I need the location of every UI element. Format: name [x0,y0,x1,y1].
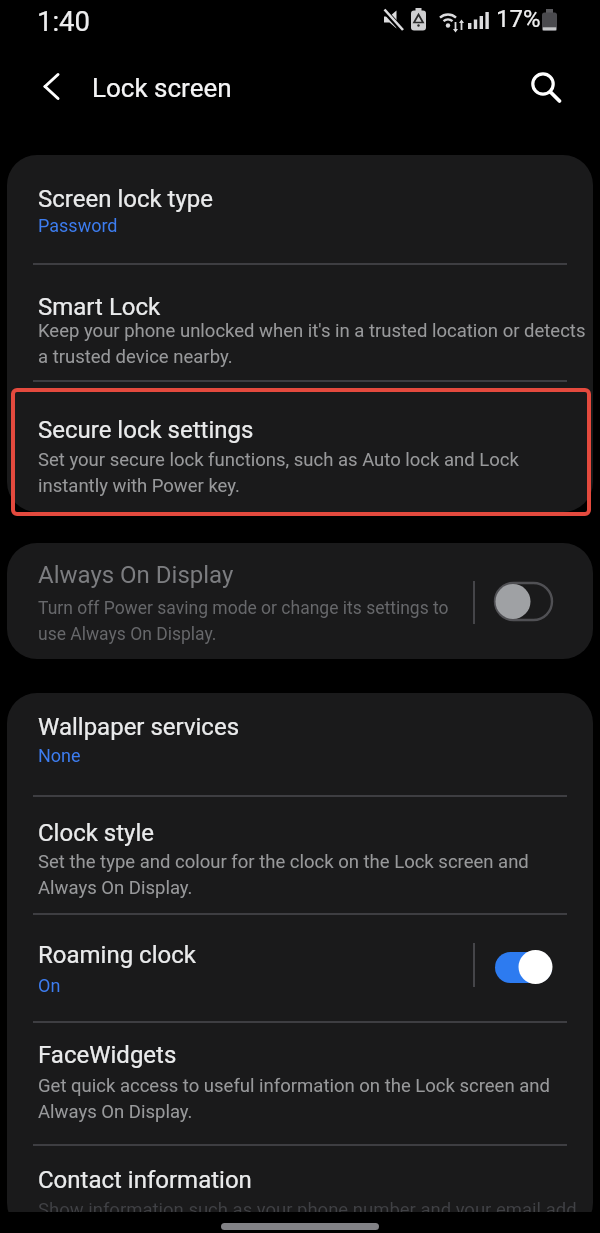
button[interactable] [221,1223,379,1230]
button[interactable] [524,64,568,108]
staticText: Lock screen [92,73,232,103]
staticText: a trusted device nearby. [38,346,233,368]
staticText: use Always On Display. [38,624,217,645]
staticText: On [38,975,61,996]
button[interactable]: Contact information [7,1146,593,1233]
staticText: 1:40 [37,5,91,37]
staticText: Always On Display. [38,877,193,899]
staticText: Wallpaper services [38,713,240,741]
staticText: FaceWidgets [38,1041,177,1069]
button[interactable] [38,68,66,106]
button[interactable]: Clock style [7,797,593,913]
staticText: Set your secure lock functions, such as … [38,449,519,471]
button[interactable]: Wallpaper services [7,693,593,795]
button[interactable] [493,581,559,625]
staticText: Roaming clock [38,941,196,969]
staticText: 17% [496,5,541,33]
button[interactable]: Roaming clock [7,915,593,1021]
staticText: Set the type and colour for the clock on… [38,851,529,873]
staticText: Password [38,215,118,236]
staticText: Clock style [38,819,154,847]
button[interactable]: Always On Display [7,543,593,659]
staticText: Screen lock type [38,185,213,213]
staticText: instantly with Power key. [38,475,240,497]
staticText: Smart Lock [38,293,161,321]
staticText: Always On Display [38,561,234,589]
staticText: Secure lock settings [38,416,254,444]
button[interactable]: Screen lock type [7,155,593,263]
staticText: Always On Display. [38,1101,193,1123]
staticText: Keep your phone unlocked when it's in a … [38,320,586,342]
staticText: Contact information [38,1166,252,1194]
staticText: Get quick access to useful information o… [38,1075,550,1097]
staticText: None [38,745,81,766]
button[interactable]: FaceWidgets [7,1023,593,1144]
button[interactable]: Secure lock settings [7,382,593,512]
staticText: Turn off Power saving mode or change its… [38,598,449,619]
button[interactable]: Smart Lock [7,265,593,380]
button[interactable] [491,943,561,989]
staticText: Show information such as your phone numb… [38,1199,577,1221]
